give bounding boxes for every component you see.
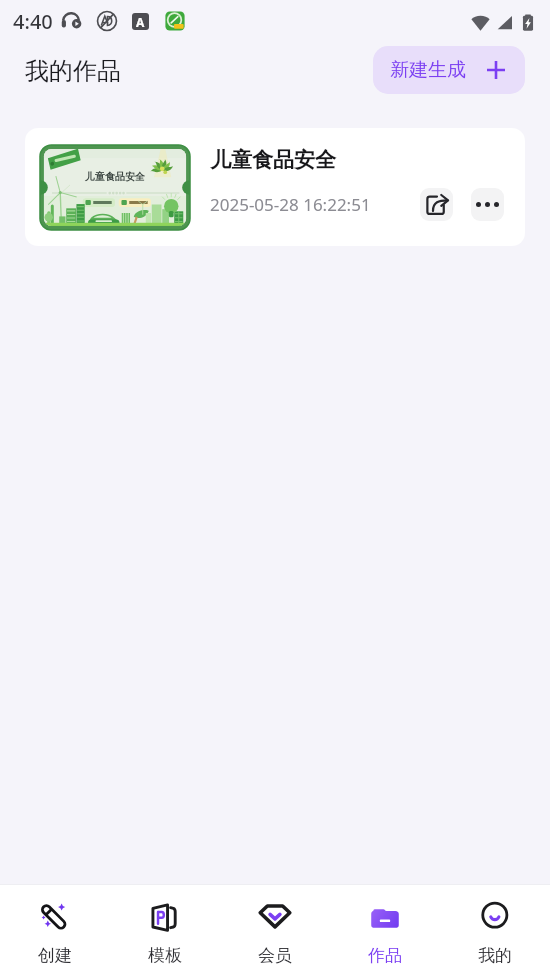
staticText: 4:40 — [13, 8, 53, 35]
staticText: 新建生成 — [390, 58, 466, 82]
button[interactable]: More options — [471, 188, 504, 221]
staticText: 我的作品 — [25, 56, 121, 86]
button[interactable]: 儿童食品安全 — [25, 128, 525, 246]
staticText: 创建 — [38, 945, 72, 966]
button[interactable]: 作品 — [330, 885, 440, 977]
button[interactable]: 模板 — [110, 885, 220, 977]
staticText: 2025-05-28 16:22:51 — [210, 193, 371, 216]
button[interactable]: 会员 — [220, 885, 330, 977]
staticText: 会员 — [258, 945, 292, 966]
staticText: A — [136, 14, 145, 30]
staticText: 儿童食品安全 — [85, 170, 145, 183]
button[interactable]: 我的 — [440, 885, 550, 977]
button[interactable]: Share — [420, 188, 453, 221]
button[interactable]: 创建 — [0, 885, 110, 977]
button[interactable]: 新建生成 — [373, 46, 525, 94]
staticText: 儿童食品安全 — [210, 147, 336, 173]
staticText: 我的 — [478, 945, 512, 966]
staticText: 模板 — [148, 945, 182, 966]
staticText: 作品 — [368, 945, 402, 966]
